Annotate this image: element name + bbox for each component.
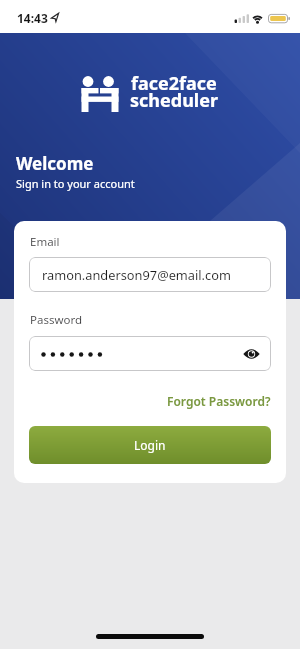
button[interactable]: Login xyxy=(29,426,271,464)
button[interactable] xyxy=(29,336,271,371)
staticText: Password xyxy=(30,312,83,328)
staticText: ramon.anderson97@email.com xyxy=(42,266,231,283)
staticText: 14:43 xyxy=(17,10,48,26)
staticText: Login xyxy=(134,437,166,453)
button[interactable]: Forgot Password? xyxy=(167,393,271,409)
button[interactable]: ramon.anderson97@email.com xyxy=(29,257,271,292)
staticText: face2face xyxy=(131,71,217,96)
staticText: Email xyxy=(30,234,60,250)
staticText: Welcome xyxy=(16,152,94,175)
staticText: Sign in to your account xyxy=(16,176,135,191)
staticText: Forgot Password? xyxy=(167,393,271,409)
staticText: scheduler xyxy=(130,88,219,113)
